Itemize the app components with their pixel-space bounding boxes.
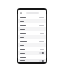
button[interactable] (18, 55, 46, 59)
button[interactable]: Toggle setting (18, 51, 46, 55)
button[interactable]: Toggle setting (39, 60, 44, 62)
button[interactable]: Menu (19, 11, 22, 14)
button[interactable] (18, 15, 46, 19)
button[interactable] (18, 35, 46, 39)
button[interactable]: Toggle setting (39, 52, 44, 54)
button[interactable] (18, 23, 46, 27)
button[interactable] (18, 31, 46, 35)
button[interactable] (18, 19, 46, 23)
button[interactable] (18, 43, 46, 47)
button[interactable] (18, 47, 46, 51)
button[interactable] (18, 39, 46, 43)
button[interactable] (18, 27, 46, 31)
button[interactable]: Toggle setting (18, 59, 46, 62)
